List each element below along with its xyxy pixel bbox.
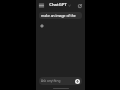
staticText: Ask anything — [41, 79, 61, 83]
button[interactable]: Assistant — [39, 23, 44, 28]
button[interactable]: New chat — [76, 2, 83, 9]
staticText: ChatGPT — [49, 2, 67, 8]
staticText: make an image of the best ai — [41, 13, 80, 18]
button[interactable]: Ask anything — [39, 77, 82, 85]
button[interactable]: Open menu — [38, 2, 45, 9]
button[interactable]: ChatGPT — [48, 1, 72, 9]
button[interactable]: Send message — [75, 79, 80, 84]
button[interactable]: make an image of the best ai — [39, 12, 82, 19]
